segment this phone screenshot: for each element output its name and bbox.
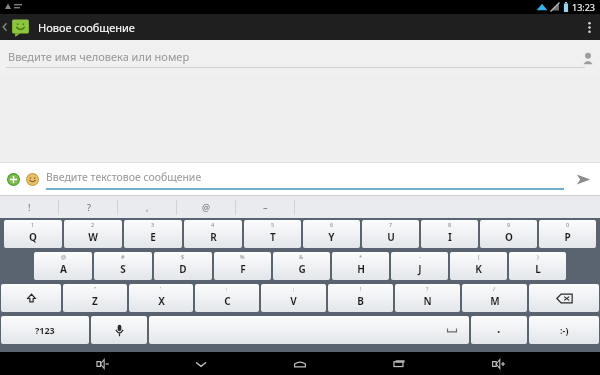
button[interactable]: # [94,252,152,280]
button[interactable]: * [332,252,389,280]
staticText: A [60,262,67,276]
staticText: N [423,294,432,308]
staticText: B [357,294,364,308]
staticText: & [299,253,304,260]
button[interactable]: 1 [4,220,62,248]
button[interactable]: ! [328,284,393,312]
button[interactable]: . [471,316,527,344]
staticText: Введите имя человека или номер [8,49,190,64]
button[interactable]: – [236,196,295,218]
staticText: 7 [389,221,393,228]
button[interactable]: 2 [64,220,122,248]
staticText: ! [28,201,31,213]
staticText: T [270,230,276,244]
staticText: ? [87,201,91,213]
button[interactable]: ? [395,284,460,312]
staticText: - [419,253,421,260]
button[interactable]: ' [129,284,193,312]
staticText: :-) [560,324,569,336]
button[interactable]: Введите имя человека или номер [0,40,600,76]
staticText: 8 [448,221,452,228]
button[interactable]: Volume up [481,352,515,375]
button[interactable]: Emoji [24,171,40,187]
button[interactable]: ? [59,196,118,218]
button[interactable]: % [214,252,271,280]
staticText: 13:23 [572,1,596,13]
button[interactable]: ; [261,284,326,312]
staticText: @ [61,253,66,260]
button[interactable]: Add contact [576,40,600,76]
button[interactable]: Home [283,352,317,375]
button[interactable]: ! [0,196,59,218]
staticText: J [418,262,422,276]
button[interactable]: ( [450,252,507,280]
button[interactable]: @ [34,252,92,280]
staticText: E [150,230,156,244]
staticText: ? [426,285,429,292]
button[interactable]: - [391,252,448,280]
staticText: K [475,262,482,276]
button[interactable]: :-) [529,316,599,344]
staticText: ) [537,253,539,260]
button[interactable]: " [63,284,127,312]
staticText: ; [293,285,295,292]
button[interactable]: ) [509,252,566,280]
button[interactable]: 9 [480,220,537,248]
button[interactable]: Voice input [91,316,147,344]
staticText: : [226,285,228,292]
staticText: U [387,230,395,244]
staticText: M [490,294,500,308]
button[interactable]: : [195,284,259,312]
staticText: H [357,262,365,276]
staticText: ( [478,253,480,260]
button[interactable]: Recent apps [382,352,416,375]
staticText: D [179,262,187,276]
button[interactable]: Send [570,166,596,192]
staticText: / [493,285,496,292]
staticText: G [298,262,306,276]
staticText: $ [181,253,185,260]
staticText: L [535,262,541,276]
staticText: Q [29,230,37,244]
button[interactable]: @ [177,196,236,218]
staticText: 3 [151,221,155,228]
staticText: Y [328,230,335,244]
button[interactable]: More options [578,14,600,40]
button[interactable]: , [118,196,177,218]
button[interactable]: Hide keyboard [184,352,218,375]
button[interactable]: Attach [5,171,21,187]
button[interactable]: Volume down [85,352,119,375]
button[interactable]: 3 [124,220,182,248]
button[interactable]: $ [154,252,212,280]
button[interactable]: 5 [244,220,301,248]
button[interactable]: 7 [362,220,419,248]
staticText: ?123 [35,324,55,336]
button[interactable]: / [462,284,527,312]
button[interactable]: 0 [539,220,596,248]
staticText: P [564,230,571,244]
button[interactable]: Space [149,316,469,344]
staticText: 1 [31,221,35,228]
staticText: . [497,320,501,336]
staticText: ! [360,285,362,292]
staticText: 5 [271,221,275,228]
staticText: " [94,285,97,292]
button[interactable]: Backspace [529,284,599,312]
button[interactable]: 4 [184,220,242,248]
staticText: X [158,294,165,308]
staticText: Новое сообщение [38,20,135,35]
staticText: C [224,294,231,308]
staticText: % [240,253,245,260]
staticText: 6 [330,221,334,228]
button[interactable]: Введите текстовое сообщение [46,163,564,195]
button[interactable]: ?123 [1,316,89,344]
staticText: R [210,230,217,244]
staticText: # [121,253,125,260]
button[interactable]: 8 [421,220,478,248]
button[interactable]: 6 [303,220,360,248]
staticText: 4 [211,221,215,228]
button[interactable]: & [273,252,330,280]
staticText: – [263,201,268,213]
button[interactable]: Shift [1,284,61,312]
staticText: Z [92,294,98,308]
